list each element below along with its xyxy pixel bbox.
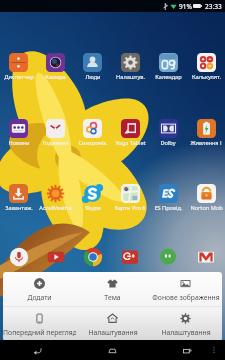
staticText: Попередний перегляд xyxy=(3,328,76,337)
button[interactable]: Калькулят. xyxy=(187,53,225,81)
button[interactable]: AccuWeathe xyxy=(37,184,74,212)
button[interactable]: Попередний перегляд xyxy=(3,307,76,341)
staticText: Dolby xyxy=(160,139,176,147)
button[interactable]: Камера xyxy=(37,53,74,81)
staticText: Камера xyxy=(45,73,66,81)
button[interactable]: Тема xyxy=(76,272,149,306)
button[interactable]: Налаштув. xyxy=(111,53,149,81)
button[interactable]: Norton Mob xyxy=(187,184,225,212)
staticText: Налаштув. xyxy=(116,73,145,81)
button[interactable]: Фонове зображення xyxy=(149,272,222,306)
button[interactable]: ES Провід. xyxy=(149,184,187,212)
button[interactable]: Завантаж. xyxy=(0,184,37,212)
staticText: AccuWeathe xyxy=(39,204,72,212)
button[interactable]: Back xyxy=(0,340,75,360)
button[interactable]: Додати xyxy=(3,272,76,306)
staticText: Календар xyxy=(155,73,182,81)
staticText: Карти Pro 6 xyxy=(114,204,146,212)
button[interactable]: Налаштування xyxy=(149,307,222,341)
button[interactable]: More options xyxy=(209,345,219,355)
button[interactable]: Диспетчер xyxy=(0,53,37,81)
button[interactable] xyxy=(111,247,149,267)
button[interactable]: Налаштування xyxy=(76,307,149,341)
button[interactable] xyxy=(149,247,187,267)
button[interactable]: Люди xyxy=(74,53,111,81)
button[interactable] xyxy=(37,247,74,267)
button[interactable]: Skype xyxy=(74,184,111,212)
staticText: Додати xyxy=(27,293,52,302)
button[interactable] xyxy=(0,247,37,267)
button[interactable]: Календар xyxy=(149,53,187,81)
staticText: Новини xyxy=(8,139,30,147)
staticText: Синхроніз. xyxy=(78,139,108,147)
staticText: Skype xyxy=(85,204,101,212)
staticText: Norton Mob xyxy=(190,204,223,212)
staticText: 23:33 xyxy=(205,2,222,11)
staticText: Фонове зображення xyxy=(152,293,220,302)
button[interactable] xyxy=(74,247,111,267)
button[interactable]: Карти Pro 6 xyxy=(111,184,149,212)
staticText: ES Провід. xyxy=(154,204,183,212)
button[interactable]: Новини xyxy=(0,119,37,147)
staticText: Годинник xyxy=(42,139,69,147)
staticText: Налаштування xyxy=(161,328,211,337)
staticText: Налаштування xyxy=(88,328,138,337)
staticText: Диспетчер xyxy=(4,73,34,81)
staticText: Калькулят. xyxy=(192,73,221,81)
button[interactable]: Годинник xyxy=(37,119,74,147)
button[interactable]: Живлення І xyxy=(187,119,225,147)
button[interactable]: Home xyxy=(75,340,150,360)
button[interactable] xyxy=(187,247,225,267)
button[interactable]: Recents xyxy=(150,340,225,360)
staticText: Yoga Tablet xyxy=(115,139,146,147)
button[interactable]: Yoga Tablet xyxy=(111,119,149,147)
button[interactable]: Dolby xyxy=(149,119,187,147)
staticText: 91% xyxy=(179,2,192,11)
staticText: Завантаж. xyxy=(5,204,33,212)
button[interactable]: Синхроніз. xyxy=(74,119,111,147)
staticText: Живлення І xyxy=(190,139,222,147)
staticText: Тема xyxy=(104,293,121,302)
staticText: Люди xyxy=(85,73,101,81)
